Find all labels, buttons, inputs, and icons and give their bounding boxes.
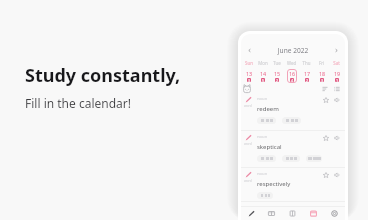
staticText: 14	[260, 70, 267, 77]
staticText: 13	[246, 70, 253, 77]
button[interactable]: Notes	[282, 207, 303, 220]
staticText: Sat	[329, 60, 344, 66]
staticText: Tue	[270, 60, 284, 66]
staticText: redeem	[257, 105, 279, 113]
button[interactable]: Previous month	[245, 46, 254, 55]
button[interactable]: Add to favorites	[322, 171, 330, 179]
button[interactable]: Settings	[324, 207, 345, 220]
staticText: 2	[276, 78, 279, 82]
staticText: 4	[291, 78, 294, 82]
button[interactable]	[257, 117, 276, 124]
button[interactable]: Dictionary	[261, 207, 282, 220]
staticText: 18	[319, 70, 326, 77]
button[interactable]: word	[241, 93, 345, 131]
staticText: word	[244, 104, 252, 108]
staticText: Fri	[314, 60, 329, 66]
button[interactable]: 14	[256, 69, 270, 85]
button[interactable]	[257, 155, 276, 162]
staticText: 5	[262, 78, 265, 82]
staticText: respectively	[257, 180, 291, 188]
button[interactable]	[306, 155, 322, 162]
staticText: 17	[304, 70, 311, 77]
staticText: noun	[257, 96, 268, 102]
button[interactable]: 13	[242, 69, 256, 85]
button[interactable]: Play audio	[333, 171, 341, 179]
button[interactable]: Calendar	[303, 207, 324, 220]
staticText: Fill in the calendar!	[25, 95, 131, 111]
button[interactable]: 17	[299, 69, 314, 85]
button[interactable]: word	[241, 168, 345, 202]
button[interactable]: More options	[332, 84, 341, 93]
button[interactable]: word	[241, 131, 345, 168]
staticText: 3	[248, 78, 251, 82]
staticText: June 2022	[254, 46, 332, 55]
staticText: 16	[289, 70, 296, 77]
staticText: 1	[336, 78, 339, 82]
button[interactable]: 15	[270, 69, 284, 85]
button[interactable]: Sort	[320, 84, 329, 93]
staticText: Sun	[242, 60, 256, 66]
staticText: 19	[334, 70, 341, 77]
staticText: Wed	[284, 60, 299, 66]
button[interactable]: Add to favorites	[322, 134, 330, 142]
staticText: skeptical	[257, 143, 282, 151]
staticText: word	[244, 179, 252, 183]
staticText: 2	[306, 78, 309, 82]
staticText: Mon	[256, 60, 270, 66]
staticText: word	[244, 142, 252, 146]
staticText: 15	[274, 70, 281, 77]
staticText: Thu	[299, 60, 314, 66]
staticText: Study constantly,	[25, 63, 181, 88]
button[interactable]: Play audio	[333, 134, 341, 142]
button[interactable]	[257, 192, 273, 199]
staticText: noun	[257, 171, 268, 177]
button[interactable]: Write	[241, 207, 261, 220]
staticText: noun	[257, 134, 268, 140]
button[interactable]: Play audio	[333, 96, 341, 104]
button[interactable]: 16	[284, 69, 299, 85]
button[interactable]: 19	[329, 69, 344, 85]
button[interactable]	[282, 117, 301, 124]
button[interactable]: Next month	[332, 46, 341, 55]
button[interactable]: Add to favorites	[322, 96, 330, 104]
button[interactable]	[282, 155, 300, 162]
staticText: 3	[321, 78, 324, 82]
button[interactable]: 18	[314, 69, 329, 85]
